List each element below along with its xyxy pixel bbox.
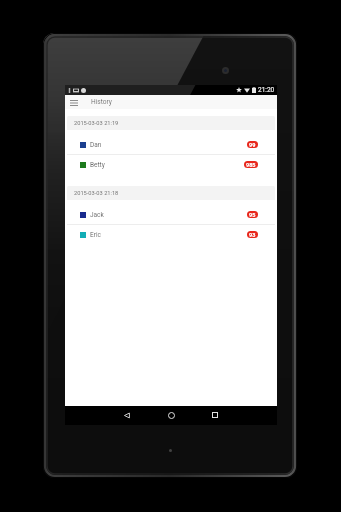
staticText: History: [91, 98, 112, 106]
button[interactable]: Recent apps: [206, 407, 224, 425]
staticText: Betty: [90, 161, 105, 169]
button[interactable]: Open navigation menu: [68, 97, 79, 108]
button[interactable]: Betty: [67, 155, 275, 174]
staticText: 2015-03-03 21:18: [74, 190, 119, 197]
staticText: 985: [246, 162, 256, 168]
button[interactable]: Home: [162, 407, 180, 425]
button[interactable]: Back: [118, 407, 136, 425]
staticText: Dan: [90, 141, 102, 149]
staticText: Eric: [90, 231, 101, 239]
staticText: Jack: [90, 211, 104, 219]
staticText: 2015-03-03 21:19: [74, 120, 119, 127]
button[interactable]: Dan: [67, 135, 275, 154]
button[interactable]: Jack: [67, 205, 275, 224]
staticText: 21:20: [258, 86, 275, 94]
staticText: 95: [249, 212, 256, 218]
staticText: 93: [249, 232, 256, 238]
button[interactable]: Eric: [67, 225, 275, 244]
staticText: 99: [249, 142, 256, 148]
